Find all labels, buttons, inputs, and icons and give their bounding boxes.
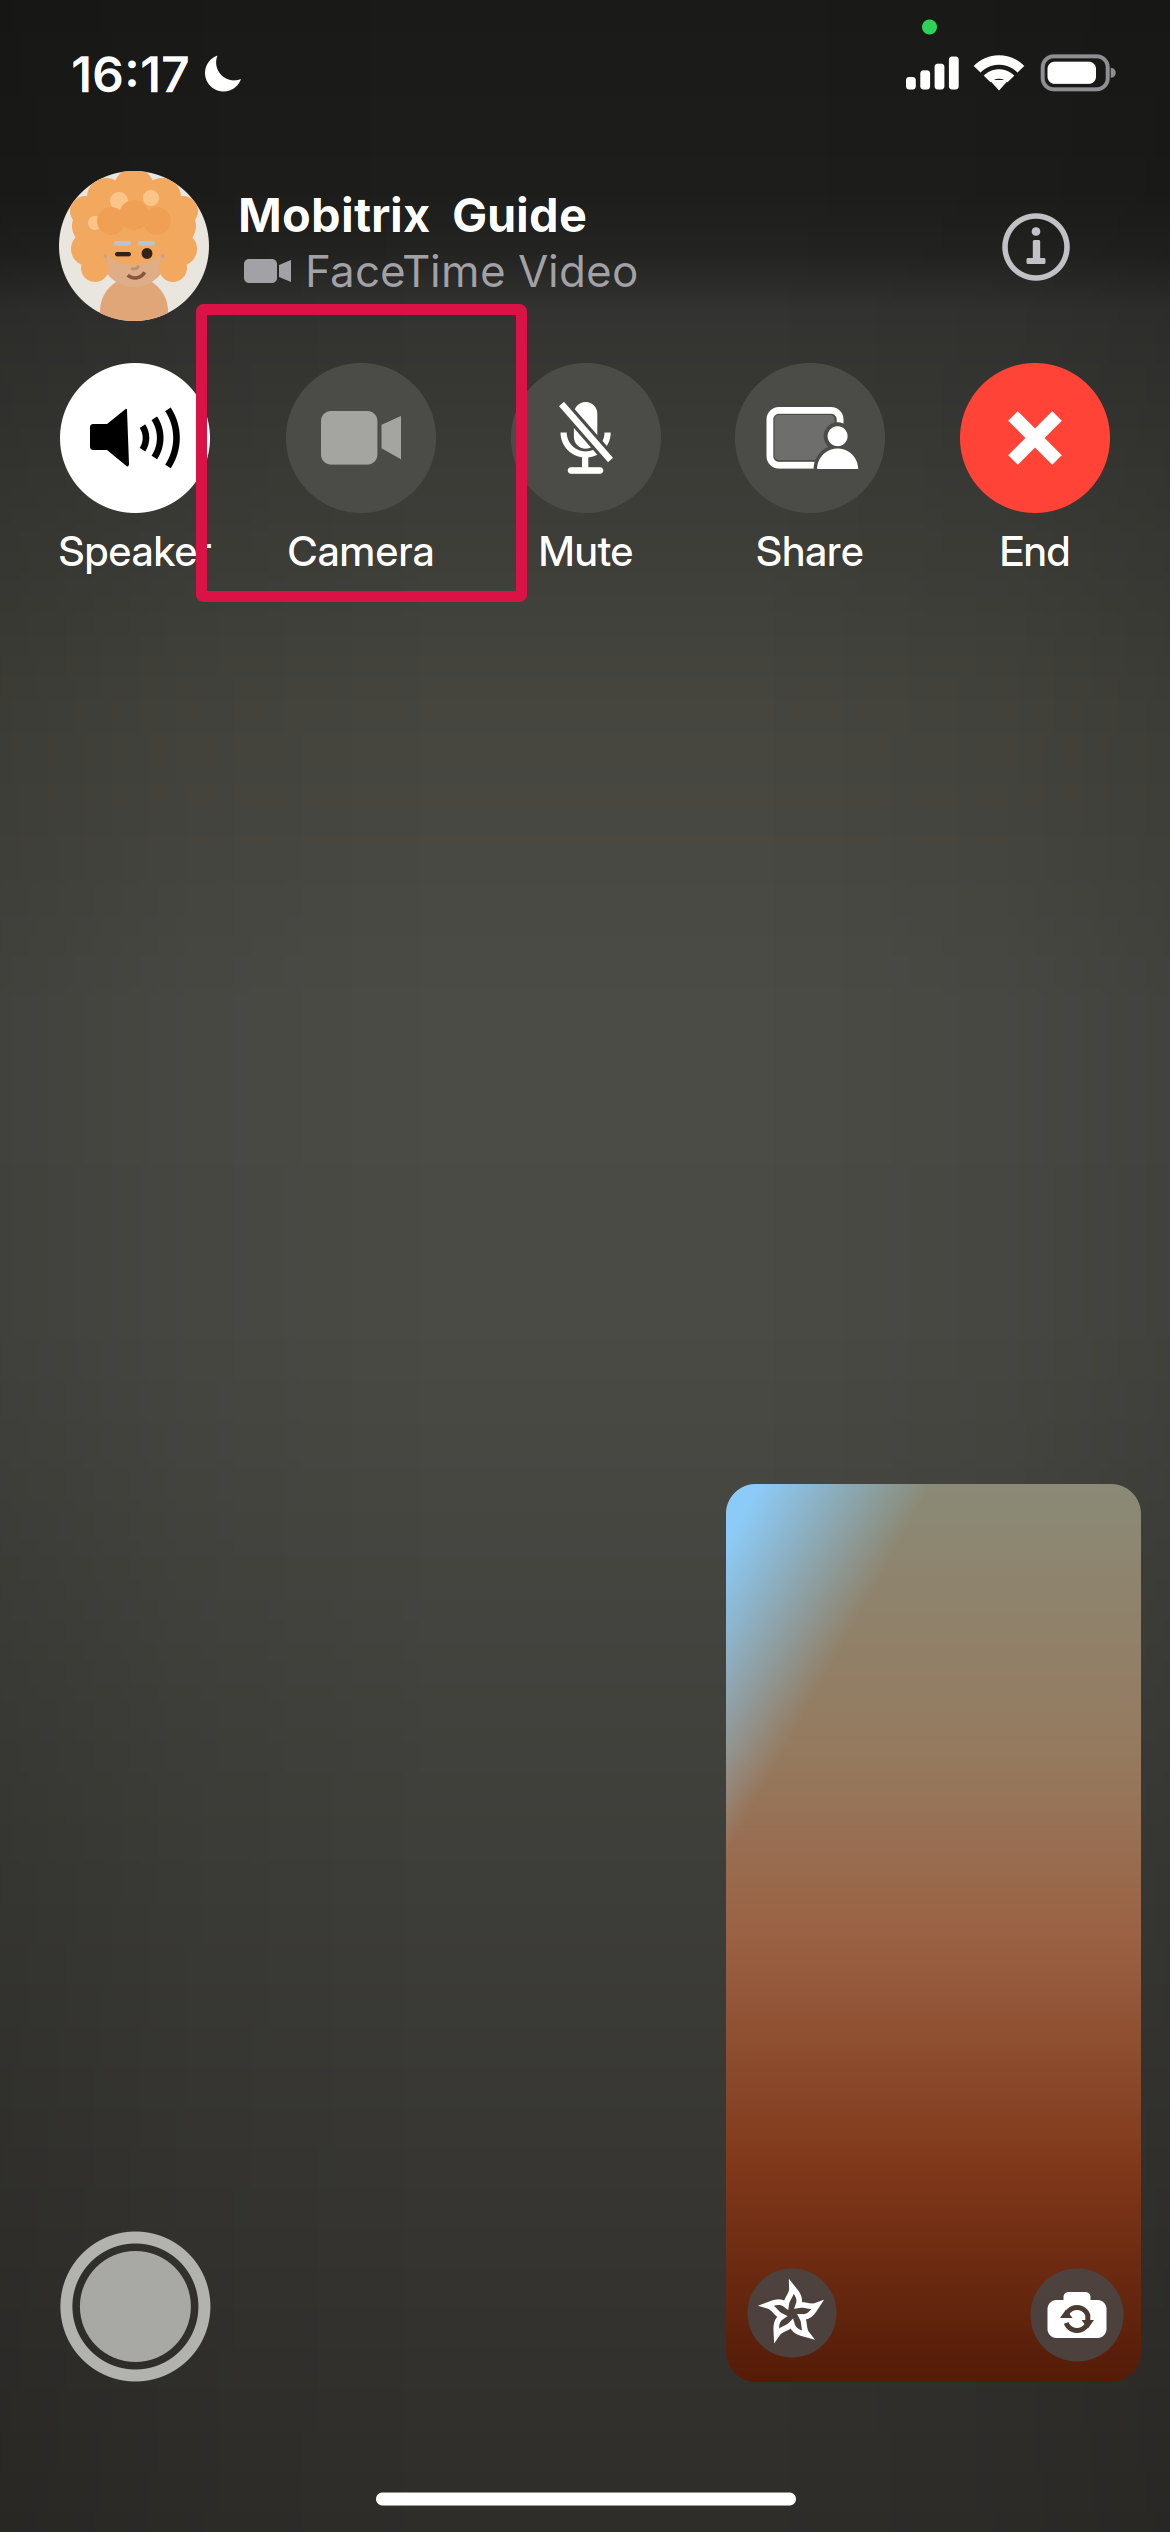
- staticText: 16:17: [71, 44, 190, 104]
- button[interactable]: Take Live Photo: [60, 2231, 210, 2381]
- button[interactable]: Speaker: [27, 363, 243, 579]
- button[interactable]: Effects: [747, 2268, 836, 2357]
- staticText: FaceTime Video: [305, 244, 638, 298]
- button[interactable]: Share: [702, 363, 918, 579]
- staticText: End: [999, 526, 1070, 576]
- button[interactable]: Camera: [253, 363, 469, 579]
- button[interactable]: End: [927, 363, 1143, 579]
- staticText: Share: [756, 526, 864, 576]
- button[interactable]: Call details: [1002, 213, 1069, 280]
- button[interactable]: Mute: [478, 363, 694, 579]
- staticText: Speaker: [58, 526, 211, 576]
- button[interactable]: Flip camera: [1030, 2268, 1123, 2361]
- staticText: Mobitrix Guide: [238, 187, 587, 243]
- staticText: Camera: [287, 526, 434, 576]
- staticText: Mute: [538, 526, 633, 576]
